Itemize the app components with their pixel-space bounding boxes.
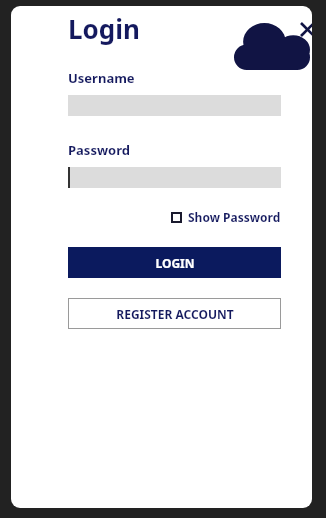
button[interactable]: REGISTER ACCOUNT <box>68 298 281 329</box>
staticText: Login <box>68 11 140 46</box>
staticText: Show Password <box>188 209 281 225</box>
staticText: LOGIN <box>155 255 195 271</box>
staticText: Username <box>68 69 135 87</box>
button[interactable]: LOGIN <box>68 247 281 278</box>
button[interactable]: Show Password <box>171 209 281 225</box>
button[interactable] <box>68 167 281 188</box>
staticText: REGISTER ACCOUNT <box>116 306 234 322</box>
button[interactable]: Close <box>295 17 312 41</box>
staticText: Password <box>68 141 130 159</box>
